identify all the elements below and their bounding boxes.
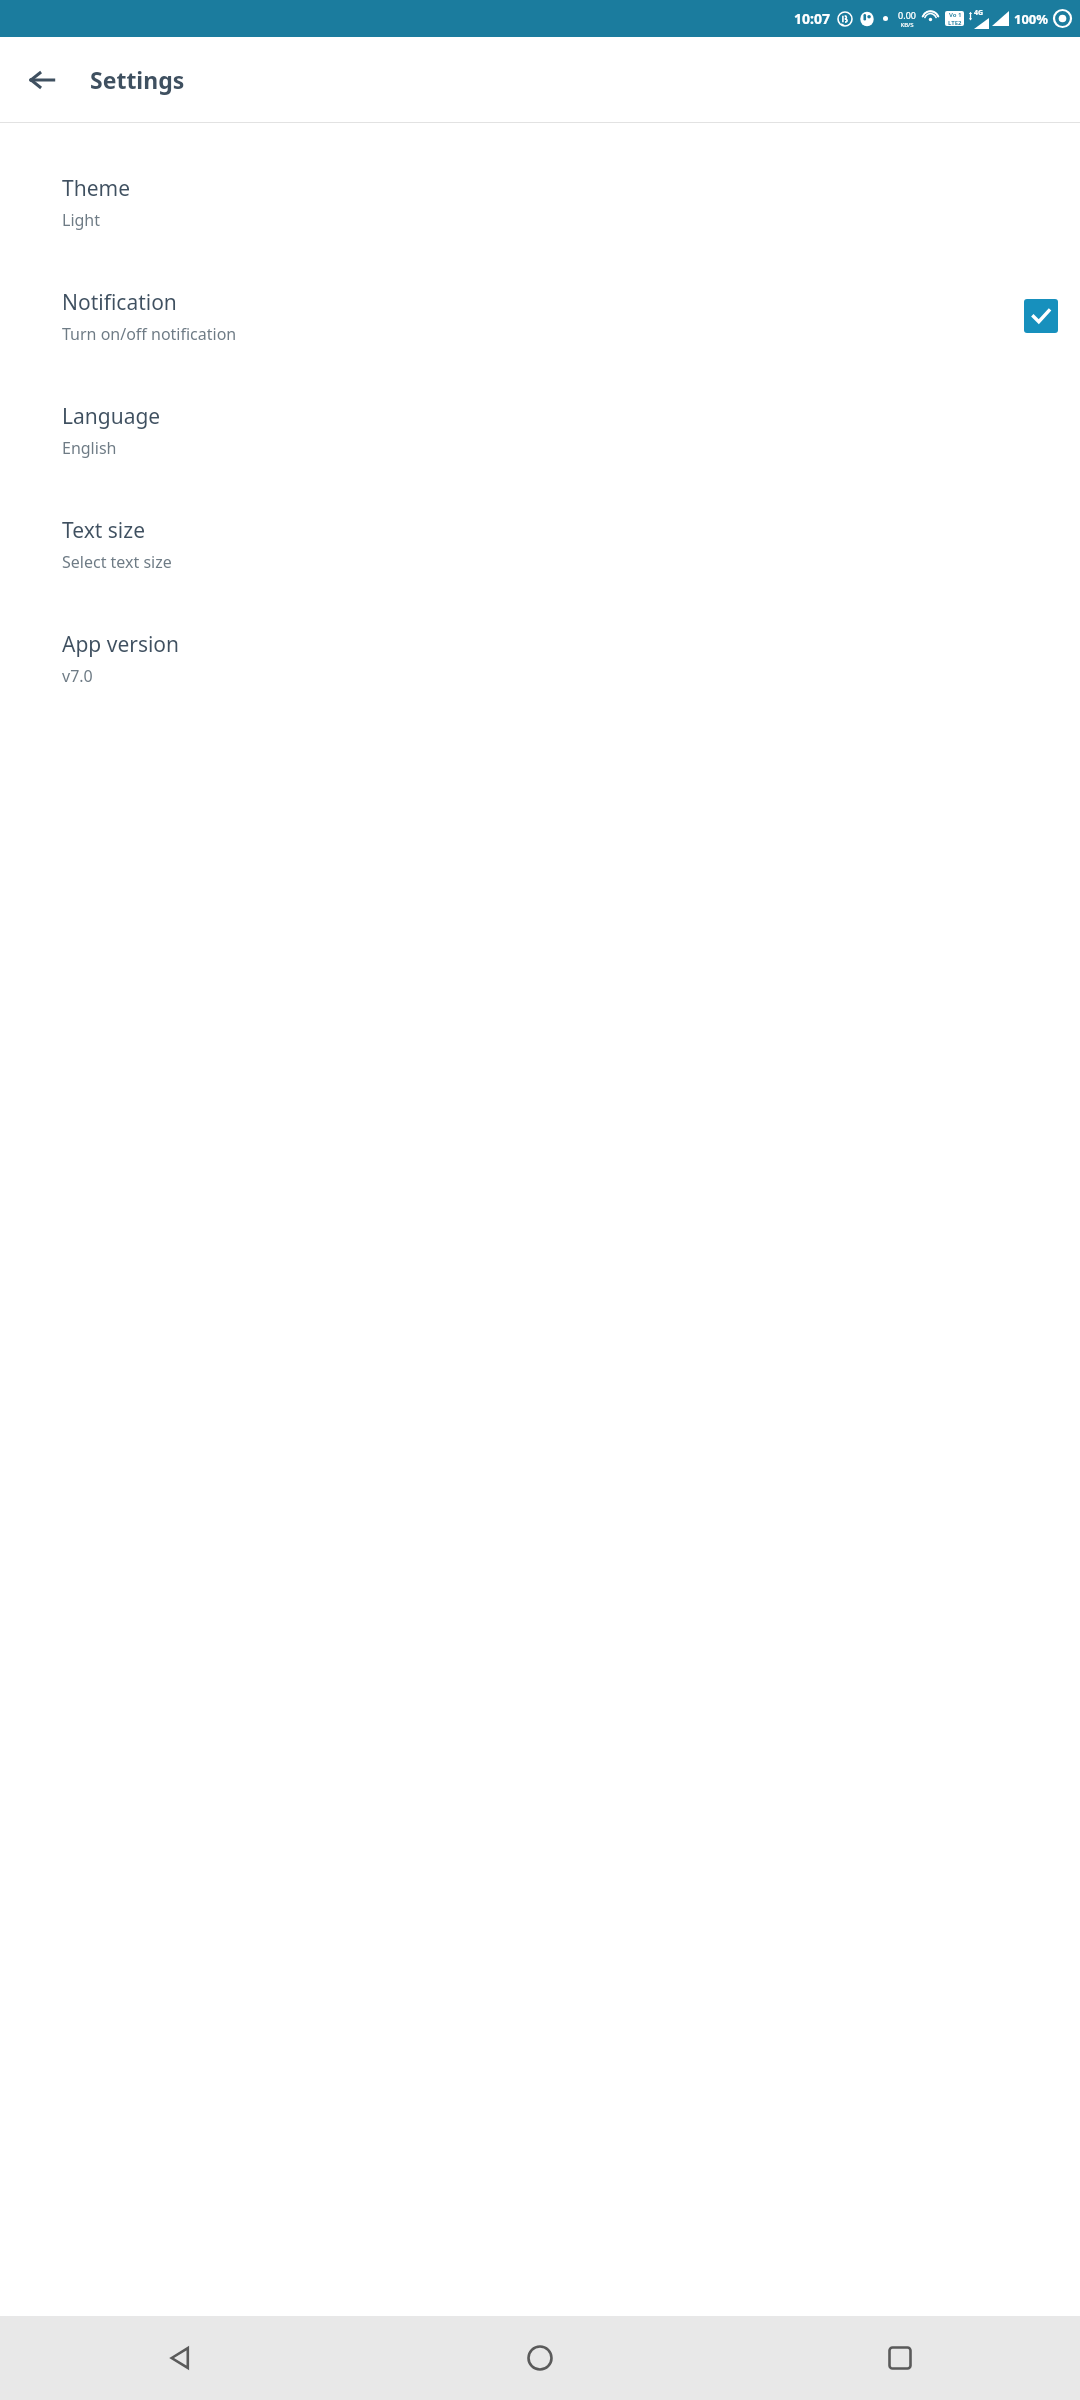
staticText: 100% bbox=[1014, 10, 1049, 28]
staticText: 0.00 bbox=[898, 9, 916, 21]
staticText: English bbox=[62, 437, 117, 459]
button[interactable]: Back bbox=[18, 56, 66, 104]
staticText: Turn on/off notification bbox=[62, 323, 237, 345]
staticText: App version bbox=[62, 630, 180, 659]
staticText: Language bbox=[62, 402, 161, 431]
button[interactable]: Back bbox=[0, 2316, 360, 2400]
button[interactable]: Notification enabled bbox=[1024, 299, 1058, 333]
staticText: 10:07 bbox=[794, 9, 830, 28]
button[interactable]: Text size bbox=[0, 487, 1080, 601]
button[interactable]: Notification bbox=[0, 259, 1080, 373]
staticText: LTE2 bbox=[948, 19, 962, 26]
staticText: Theme bbox=[62, 174, 130, 203]
button[interactable]: Theme bbox=[0, 145, 1080, 259]
staticText: Select text size bbox=[62, 551, 172, 573]
staticText: Vo 1 bbox=[949, 11, 962, 19]
staticText: Settings bbox=[90, 64, 185, 95]
button[interactable]: Home bbox=[360, 2316, 720, 2400]
staticText: Text size bbox=[62, 516, 145, 545]
staticText: KB/S bbox=[900, 21, 914, 29]
staticText: Notification bbox=[62, 288, 177, 317]
staticText: v7.0 bbox=[62, 665, 93, 687]
staticText: Light bbox=[62, 209, 101, 231]
button[interactable]: Language bbox=[0, 373, 1080, 487]
button[interactable]: Recents bbox=[720, 2316, 1080, 2400]
staticText: 4G bbox=[974, 8, 984, 18]
button[interactable]: App version bbox=[0, 601, 1080, 715]
